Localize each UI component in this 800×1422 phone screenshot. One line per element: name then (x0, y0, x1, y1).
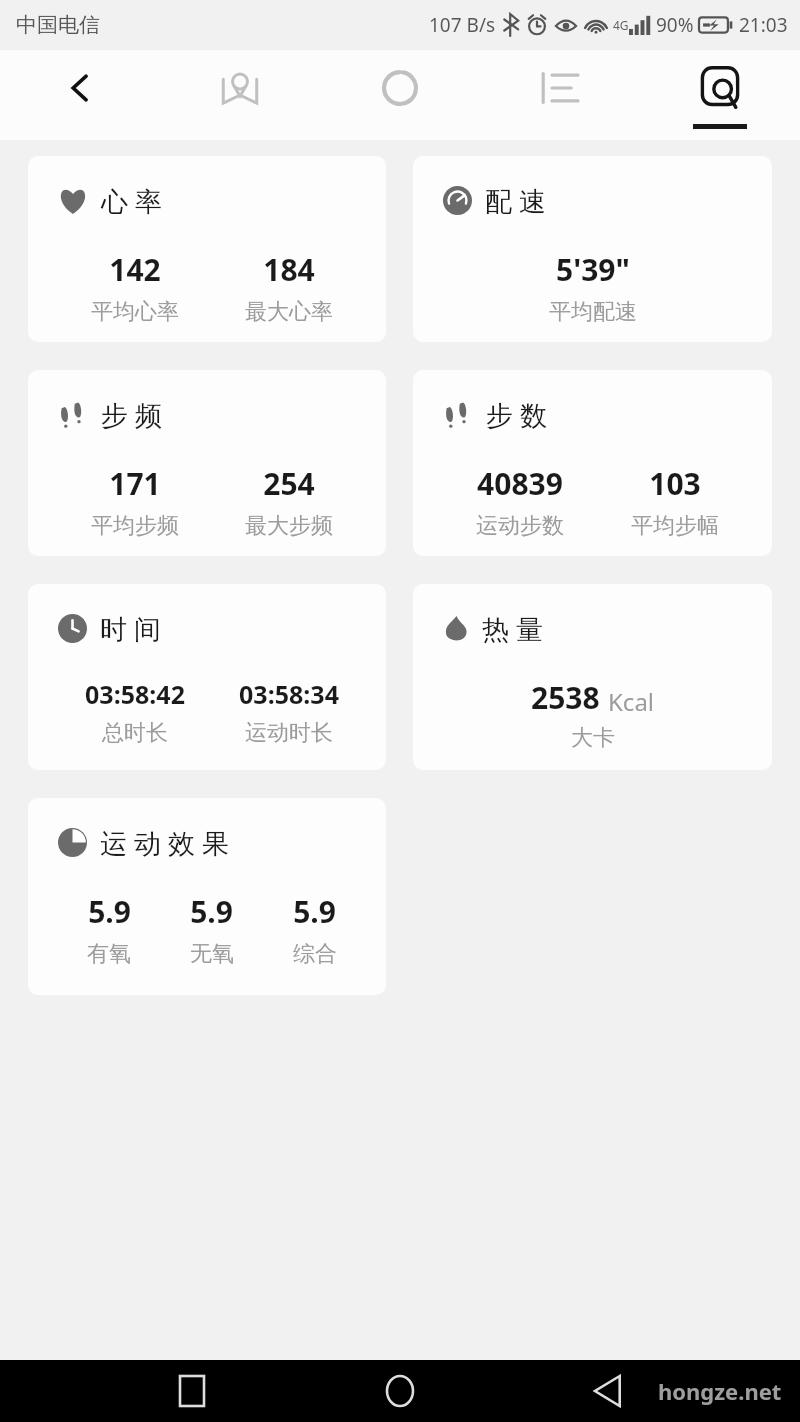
staticText: 5.9 (293, 891, 336, 932)
staticText: 142 (109, 249, 161, 290)
button[interactable]: 步 数 (413, 370, 772, 556)
staticText: 运动步数 (476, 512, 564, 540)
staticText: 107 B/s (429, 12, 496, 38)
button[interactable]: 运 动 效 果 (28, 798, 386, 995)
staticText: 运动时长 (245, 719, 333, 747)
staticText: 40839 (477, 463, 563, 504)
staticText: 有氧 (87, 940, 131, 968)
staticText: 171 (109, 463, 161, 504)
button[interactable]: Map (160, 50, 320, 140)
staticText: 无氧 (190, 940, 234, 968)
staticText: 运 动 效 果 (100, 824, 230, 861)
button[interactable]: 时 间 (28, 584, 386, 770)
button[interactable]: 心 率 (28, 156, 386, 342)
staticText: 254 (263, 463, 315, 504)
staticText: 最大心率 (245, 298, 333, 326)
button[interactable]: 步 频 (28, 370, 386, 556)
staticText: 184 (263, 249, 315, 290)
staticText: 03:58:42 (85, 677, 185, 711)
staticText: 103 (649, 463, 701, 504)
staticText: 4G (613, 17, 629, 33)
staticText: 大卡 (571, 724, 615, 752)
staticText: 21:03 (739, 12, 788, 38)
button[interactable]: Recents (170, 1369, 214, 1413)
button[interactable]: Back (0, 50, 160, 140)
staticText: 03:58:34 (239, 677, 339, 711)
staticText: 步 数 (486, 396, 548, 433)
button[interactable]: Home (378, 1369, 422, 1413)
staticText: 平均配速 (549, 298, 637, 326)
staticText: 5.9 (88, 891, 131, 932)
button[interactable]: Back (586, 1369, 630, 1413)
staticText: 综合 (293, 940, 337, 968)
button[interactable]: Progress ring (320, 50, 480, 140)
staticText: 平均心率 (91, 298, 179, 326)
button[interactable]: List (480, 50, 640, 140)
staticText: 心 率 (101, 182, 163, 219)
staticText: 总时长 (102, 719, 168, 747)
staticText: 配 速 (485, 182, 547, 219)
staticText: Kcal (608, 685, 655, 718)
staticText: 热 量 (482, 610, 544, 647)
button[interactable]: 配 速 (413, 156, 772, 342)
staticText: 步 频 (101, 396, 163, 433)
staticText: 90% (656, 12, 694, 38)
staticText: 平均步频 (91, 512, 179, 540)
staticText: 2538 (531, 677, 600, 718)
staticText: hongze.net (658, 1376, 782, 1406)
staticText: 5'39" (556, 249, 630, 290)
staticText: 平均步幅 (631, 512, 719, 540)
staticText: 最大步频 (245, 512, 333, 540)
staticText: 5.9 (190, 891, 233, 932)
staticText: 中国电信 (16, 12, 100, 38)
button[interactable]: 热 量 (413, 584, 772, 770)
staticText: 时 间 (100, 610, 162, 647)
button[interactable]: Details (640, 50, 800, 140)
